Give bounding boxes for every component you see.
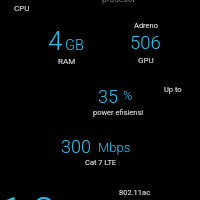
- button[interactable]: Adreno 506 GPU: [110, 18, 190, 68]
- staticText: 35: [98, 86, 118, 107]
- staticText: Adreno: [134, 21, 158, 30]
- button[interactable]: RAM 4 GB: [10, 2, 90, 68]
- staticText: power efisiensi: [93, 108, 144, 117]
- staticText: Up to: [164, 85, 182, 94]
- staticText: 1.8: [1, 189, 55, 200]
- staticText: 4: [48, 26, 63, 56]
- staticText: GB: [65, 37, 84, 54]
- staticText: CPU: [14, 4, 30, 13]
- staticText: GPU: [138, 56, 154, 65]
- staticText: 506: [130, 32, 161, 54]
- staticText: prosesor: [102, 0, 136, 4]
- staticText: Mbps: [98, 140, 131, 155]
- staticText: RAM: [58, 57, 76, 66]
- staticText: 300: [61, 136, 91, 157]
- staticText: 802.11ac: [119, 188, 151, 197]
- staticText: %: [123, 88, 133, 103]
- staticText: Cat 7 LTE: [85, 158, 117, 167]
- button[interactable]: WiFi 802.11ac: [100, 180, 180, 200]
- button[interactable]: 35 percent power efisiensi: [85, 82, 155, 120]
- button[interactable]: Cat 7 LTE up to 300 Mbps: [55, 82, 195, 170]
